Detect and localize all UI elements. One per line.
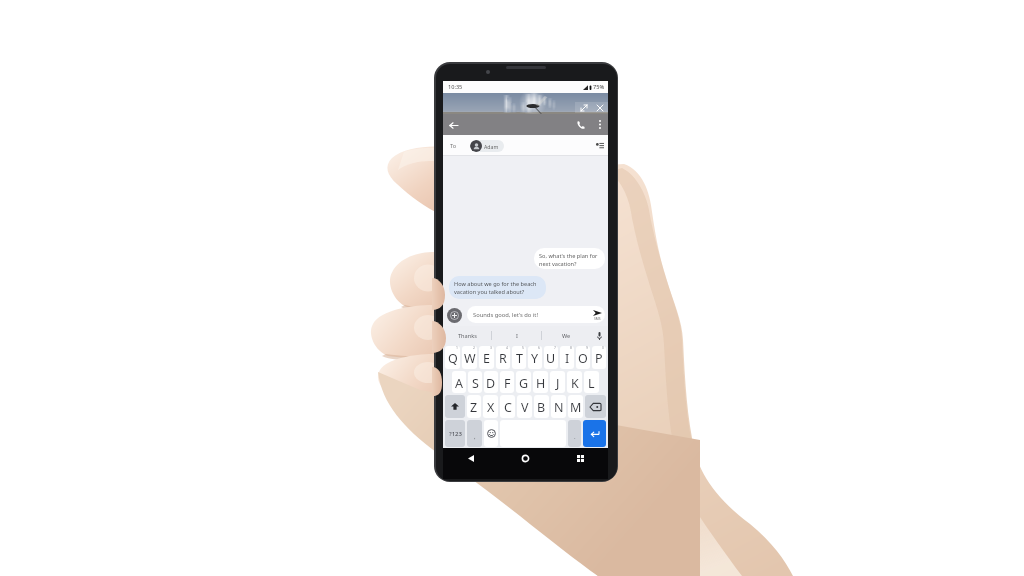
staticText: J: [556, 375, 560, 392]
staticText: O: [578, 350, 588, 367]
button[interactable]: Voice input: [591, 326, 608, 345]
button[interactable]: ?123: [445, 420, 465, 447]
button[interactable]: G: [516, 371, 531, 393]
staticText: R: [499, 350, 507, 367]
button[interactable]: 7: [544, 346, 558, 369]
staticText: 4: [506, 346, 508, 350]
staticText: 75%: [593, 83, 605, 91]
staticText: 3: [490, 346, 492, 350]
button[interactable]: 6: [528, 346, 542, 369]
button[interactable]: Close: [592, 102, 608, 113]
button[interactable]: N: [551, 395, 566, 418]
staticText: ?123: [449, 430, 462, 438]
staticText: Sounds good, let's do it!: [473, 311, 539, 319]
staticText: X: [487, 399, 495, 416]
staticText: S: [472, 375, 479, 392]
button[interactable]: Sounds good, let's do it!: [467, 306, 605, 323]
staticText: M: [570, 399, 582, 416]
button[interactable]: F: [500, 371, 514, 393]
button[interactable]: J: [550, 371, 565, 393]
staticText: A: [455, 375, 463, 392]
staticText: I: [565, 350, 570, 367]
staticText: C: [504, 399, 512, 416]
staticText: G: [519, 375, 529, 392]
button[interactable]: S: [468, 371, 482, 393]
staticText: 0: [602, 346, 604, 350]
button[interactable]: C: [500, 395, 515, 418]
button[interactable]: A: [452, 371, 466, 393]
button[interactable]: More options: [591, 116, 608, 133]
staticText: We: [562, 332, 571, 340]
staticText: H: [536, 375, 546, 392]
button[interactable]: H: [533, 371, 548, 393]
button[interactable]: M: [568, 395, 583, 418]
staticText: 10:35: [448, 83, 463, 91]
button[interactable]: 0: [592, 346, 606, 369]
button[interactable]: B: [534, 395, 549, 418]
staticText: So, what's the plan for next vacation?: [539, 252, 601, 267]
staticText: L: [588, 375, 595, 392]
button[interactable]: back: [585, 395, 606, 418]
staticText: F: [504, 375, 511, 392]
staticText: K: [571, 375, 579, 392]
staticText: ,: [474, 433, 476, 441]
button[interactable]: period: [568, 420, 581, 447]
button[interactable]: Back: [443, 115, 463, 135]
staticText: Adam: [484, 143, 499, 150]
staticText: Y: [531, 350, 539, 367]
button[interactable]: V: [517, 395, 532, 418]
button[interactable]: 9: [576, 346, 590, 369]
button[interactable]: [484, 420, 498, 447]
staticText: E: [483, 350, 490, 367]
button[interactable]: Send SMS: [593, 310, 602, 320]
staticText: 8: [570, 346, 572, 350]
button[interactable]: Z: [467, 395, 481, 418]
button[interactable]: 3: [479, 346, 494, 369]
staticText: N: [554, 399, 564, 416]
staticText: Thanks: [458, 332, 477, 340]
staticText: Q: [448, 350, 458, 367]
staticText: 2: [473, 346, 475, 350]
button[interactable]: 4: [496, 346, 510, 369]
button[interactable]: 8: [560, 346, 574, 369]
button[interactable]: 1: [445, 346, 460, 369]
staticText: B: [537, 399, 546, 416]
staticText: I: [516, 332, 518, 340]
button[interactable]: enter: [583, 420, 606, 447]
button[interactable]: We: [542, 326, 591, 345]
staticText: Z: [470, 399, 478, 416]
staticText: U: [546, 350, 556, 367]
staticText: 1: [456, 346, 458, 350]
staticText: P: [595, 350, 603, 367]
button[interactable]: Attach: [447, 308, 462, 323]
staticText: .: [574, 433, 576, 441]
staticText: 9: [586, 346, 588, 350]
button[interactable]: So, what's the plan for next vacation?: [534, 248, 605, 269]
staticText: 7: [554, 346, 556, 350]
button[interactable]: I: [492, 326, 541, 345]
button[interactable]: K: [567, 371, 582, 393]
button[interactable]: Back: [443, 448, 498, 479]
button[interactable]: Home: [498, 448, 553, 479]
button[interactable]: comma: [467, 420, 482, 447]
staticText: V: [521, 399, 529, 416]
button[interactable]: X: [483, 395, 498, 418]
staticText: SMS: [594, 316, 601, 320]
button[interactable]: 2: [462, 346, 477, 369]
staticText: T: [516, 350, 523, 367]
button[interactable]: L: [584, 371, 599, 393]
button[interactable]: Expand: [575, 102, 592, 113]
staticText: 5: [522, 346, 524, 350]
button[interactable]: Adam: [470, 140, 504, 152]
button[interactable]: D: [484, 371, 498, 393]
button[interactable]: Recent apps: [553, 448, 608, 479]
button[interactable]: Call: [571, 115, 591, 135]
staticText: W: [464, 350, 476, 367]
button[interactable]: Thanks: [443, 326, 491, 345]
button[interactable]: shift: [445, 395, 465, 418]
button[interactable]: How about we go for the beach vacation y…: [449, 276, 546, 299]
staticText: How about we go for the beach vacation y…: [454, 280, 542, 295]
button[interactable]: 5: [512, 346, 526, 369]
button[interactable]: Add recipient: [592, 138, 608, 154]
